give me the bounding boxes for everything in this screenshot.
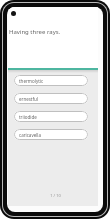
button[interactable]: caricavella <box>14 129 88 140</box>
button[interactable]: ernestful <box>14 93 88 104</box>
staticText: caricavella <box>19 132 42 138</box>
staticText: Having three rays. <box>9 28 61 36</box>
staticText: triiodide <box>19 114 37 120</box>
button[interactable]: triiodide <box>14 111 88 122</box>
staticText: 1 / 10 <box>13 193 98 198</box>
staticText: thermolytic <box>19 78 44 84</box>
staticText: ernestful <box>19 96 38 102</box>
button[interactable]: thermolytic <box>14 75 88 86</box>
